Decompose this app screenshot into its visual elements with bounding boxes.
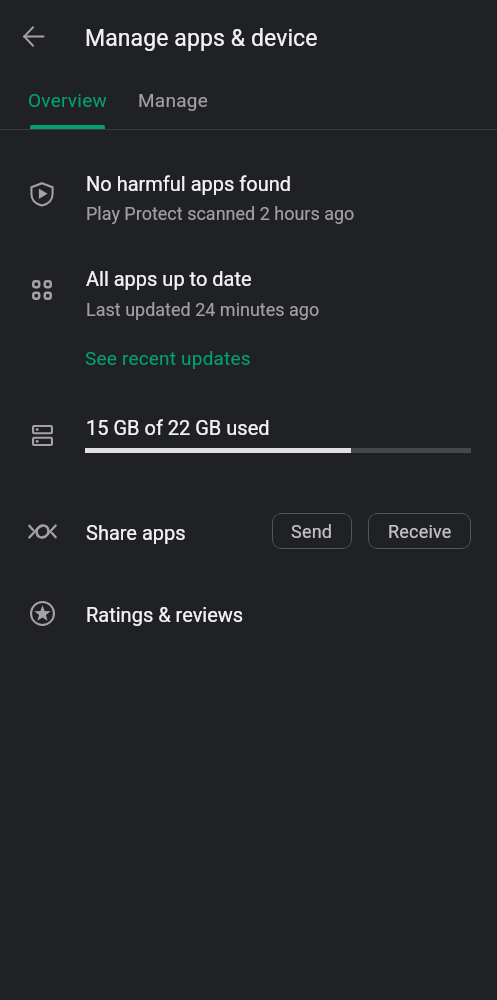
staticText: Manage apps & device <box>85 25 318 52</box>
button[interactable]: Share apps <box>0 505 497 557</box>
staticText: Receive <box>388 521 452 542</box>
staticText: Manage <box>138 89 208 111</box>
button[interactable]: No harmful apps found <box>0 162 497 226</box>
button[interactable]: Ratings & reviews <box>0 588 497 640</box>
button[interactable]: Navigate up <box>11 14 55 58</box>
staticText: Share apps <box>86 521 186 544</box>
staticText: Ratings & reviews <box>86 603 244 626</box>
button[interactable]: 15 GB of 22 GB used <box>0 408 497 464</box>
staticText: Send <box>291 521 333 542</box>
button[interactable]: Manage <box>135 72 240 130</box>
button[interactable]: See recent updates <box>81 337 247 367</box>
staticText: Overview <box>28 89 108 111</box>
staticText: All apps up to date <box>86 267 252 290</box>
button[interactable]: Receive <box>368 513 471 549</box>
staticText: Play Protect scanned 2 hours ago <box>86 203 355 224</box>
staticText: See recent updates <box>85 347 251 369</box>
staticText: Last updated 24 minutes ago <box>86 299 320 320</box>
button[interactable]: Send <box>272 513 352 549</box>
button[interactable]: All apps up to date <box>0 257 497 321</box>
staticText: 15 GB of 22 GB used <box>86 416 270 439</box>
button[interactable]: Overview <box>0 72 135 130</box>
staticText: No harmful apps found <box>86 172 291 195</box>
